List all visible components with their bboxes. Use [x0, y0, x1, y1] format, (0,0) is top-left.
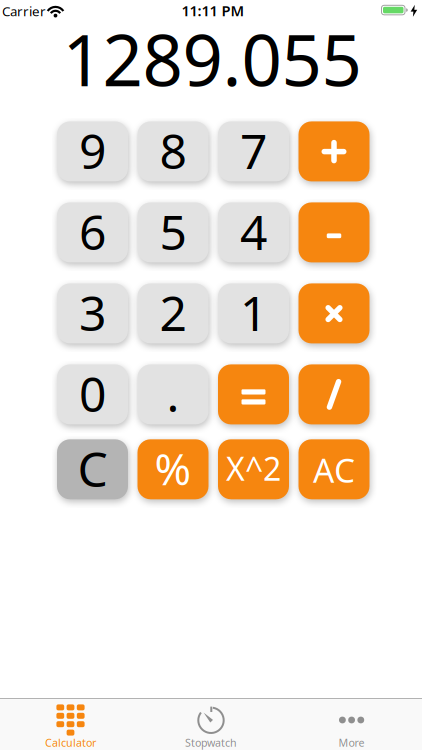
button[interactable]: 2	[137, 283, 208, 343]
button[interactable]: Add	[298, 121, 369, 181]
staticText: 5	[159, 199, 186, 263]
button[interactable]: AC	[298, 439, 369, 499]
button[interactable]: %	[137, 439, 208, 499]
staticText: 1	[240, 280, 267, 344]
button[interactable]: 3	[57, 283, 128, 343]
button[interactable]: 5	[137, 202, 208, 262]
staticText: More	[339, 735, 365, 750]
button[interactable]: Equals	[218, 364, 289, 424]
staticText: Carrier	[2, 2, 46, 20]
button[interactable]: 7	[218, 121, 289, 181]
staticText: X^2	[226, 447, 281, 490]
staticText: C	[77, 436, 107, 500]
button[interactable]: 8	[137, 121, 208, 181]
staticText: %	[154, 439, 191, 497]
button[interactable]: 9	[57, 121, 128, 181]
button[interactable]: 0	[57, 364, 128, 424]
staticText: 7	[240, 118, 267, 182]
button[interactable]: Stopwatch	[141, 699, 281, 750]
staticText: Calculator	[45, 735, 96, 750]
button[interactable]: 4	[218, 202, 289, 262]
staticText: 8	[159, 118, 186, 182]
button[interactable]: 6	[57, 202, 128, 262]
staticText: 2	[159, 280, 186, 344]
button[interactable]: 1	[218, 283, 289, 343]
button[interactable]: Multiply	[298, 283, 369, 343]
staticText: 1289.055	[62, 12, 361, 106]
button[interactable]: X^2	[218, 439, 289, 499]
staticText: AC	[313, 448, 355, 492]
staticText: .	[166, 361, 179, 425]
button[interactable]: Calculator	[0, 699, 141, 750]
staticText: 11:11 PM	[181, 1, 244, 20]
button[interactable]: .	[137, 364, 208, 424]
staticText: Stopwatch	[185, 735, 237, 750]
staticText: 0	[79, 361, 106, 425]
staticText: 6	[79, 199, 106, 263]
staticText: 3	[79, 280, 106, 344]
button[interactable]: Divide	[298, 364, 369, 424]
button[interactable]: More	[281, 699, 422, 750]
staticText: 4	[240, 199, 267, 263]
button[interactable]: Subtract	[298, 202, 369, 262]
staticText: 9	[79, 118, 106, 182]
button[interactable]: C	[57, 439, 128, 499]
